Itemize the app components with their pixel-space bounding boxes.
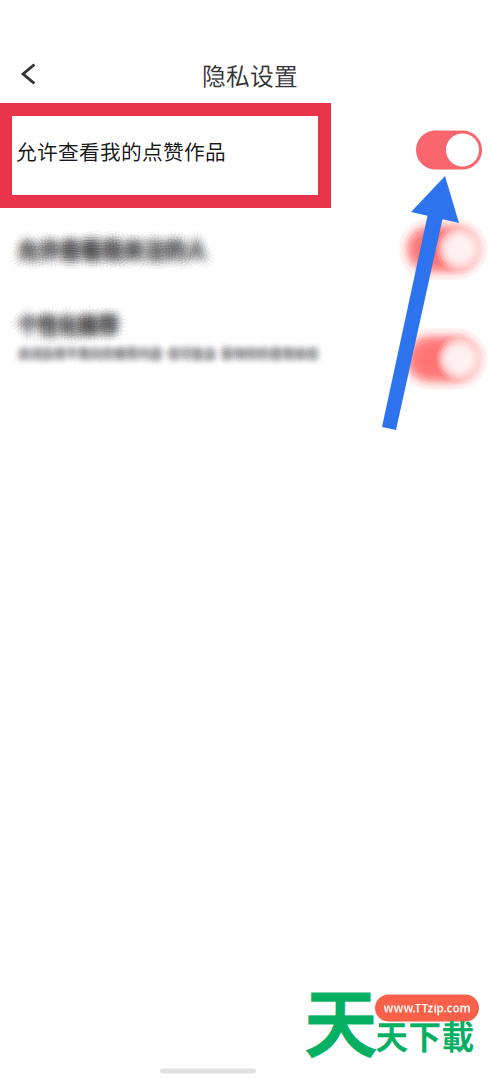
- staticText: 关闭后将不再向你推荐内容 但可能会 影响你的使用体验: [22, 350, 322, 367]
- staticText: 个性化推荐: [20, 319, 120, 348]
- staticText: 个性化推荐: [21, 313, 121, 342]
- staticText: 允许查看我关注的人: [13, 235, 202, 265]
- staticText: 个性化推荐: [17, 320, 117, 349]
- staticText: 个性化推荐: [22, 316, 122, 345]
- staticText: 允许查看我关注的人: [14, 237, 203, 267]
- staticText: 关闭后将不再向你推荐内容 但可能会 影响你的使用体验: [15, 346, 315, 363]
- staticText: 个性化推荐: [10, 316, 110, 345]
- staticText: 允许查看我关注的人: [8, 233, 197, 263]
- staticText: 个性化推荐: [17, 315, 117, 344]
- staticText: 关闭后将不再向你推荐内容 但可能会 影响你的使用体验: [23, 345, 323, 363]
- staticText: 允许查看我的点赞作品: [16, 136, 226, 166]
- staticText: 个性化推荐: [18, 307, 118, 336]
- staticText: 关闭后将不再向你推荐内容 但可能会 影响你的使用体验: [17, 340, 317, 358]
- staticText: 允许查看我关注的人: [14, 231, 203, 260]
- staticText: 允许查看我关注的人: [19, 224, 208, 254]
- staticText: 关闭后将不再向你推荐内容 但可能会 影响你的使用体验: [20, 345, 320, 362]
- staticText: 关闭后将不再向你推荐内容 但可能会 影响你的使用体验: [20, 347, 320, 364]
- staticText: 个性化推荐: [17, 317, 117, 346]
- staticText: 允许查看我关注的人: [24, 242, 213, 272]
- staticText: 个性化推荐: [11, 309, 111, 338]
- staticText: 关闭后将不再向你推荐内容 但可能会 影响你的使用体验: [18, 345, 318, 362]
- staticText: 个性化推荐: [20, 317, 120, 346]
- staticText: 允许查看我关注的人: [16, 236, 205, 266]
- staticText: 允许查看我关注的人: [25, 235, 214, 265]
- staticText: 关闭后将不再向你推荐内容 但可能会 影响你的使用体验: [17, 346, 317, 363]
- staticText: 个性化推荐: [24, 314, 124, 343]
- staticText: 个性化推荐: [25, 311, 125, 340]
- staticText: 关闭后将不再向你推荐内容 但可能会 影响你的使用体验: [13, 344, 313, 362]
- button[interactable]: 个性化推荐: [0, 314, 500, 390]
- button[interactable]: 允许查看我的点赞作品: [0, 103, 500, 207]
- staticText: 关闭后将不再向你推荐内容 但可能会 影响你的使用体验: [16, 343, 316, 360]
- staticText: 个性化推荐: [19, 305, 119, 334]
- staticText: 关闭后将不再向你推荐内容 但可能会 影响你的使用体验: [16, 349, 316, 366]
- staticText: 关闭后将不再向你推荐内容 但可能会 影响你的使用体验: [19, 348, 319, 365]
- staticText: 关闭后将不再向你推荐内容 但可能会 影响你的使用体验: [17, 351, 317, 369]
- staticText: 个性化推荐: [27, 307, 127, 336]
- staticText: 个性化推荐: [24, 306, 124, 335]
- staticText: 允许查看我关注的人: [25, 232, 214, 262]
- staticText: 关闭后将不再向你推荐内容 但可能会 影响你的使用体验: [11, 344, 311, 361]
- staticText: 关闭后将不再向你推荐内容 但可能会 影响你的使用体验: [23, 344, 323, 361]
- staticText: 允许查看我关注的人: [20, 236, 209, 266]
- staticText: 允许查看我关注的人: [28, 235, 217, 265]
- staticText: 允许查看我关注的人: [12, 226, 201, 256]
- staticText: 个性化推荐: [8, 313, 108, 342]
- staticText: 个性化推荐: [9, 305, 109, 334]
- staticText: 个性化推荐: [16, 312, 116, 341]
- staticText: 关闭后将不再向你推荐内容 但可能会 影响你的使用体验: [17, 349, 317, 367]
- staticText: 个性化推荐: [13, 318, 113, 347]
- staticText: 允许查看我关注的人: [12, 230, 201, 260]
- staticText: 允许查看我关注的人: [15, 224, 204, 254]
- staticText: 关闭后将不再向你推荐内容 但可能会 影响你的使用体验: [17, 342, 317, 359]
- staticText: 个性化推荐: [8, 309, 108, 338]
- staticText: 天: [303, 965, 378, 1073]
- staticText: 关闭后将不再向你推荐内容 但可能会 影响你的使用体验: [16, 338, 316, 356]
- staticText: 关闭后将不再向你推荐内容 但可能会 影响你的使用体验: [15, 341, 315, 358]
- staticText: 允许查看我关注的人: [23, 235, 212, 265]
- staticText: 个性化推荐: [21, 307, 121, 336]
- staticText: 允许查看我关注的人: [19, 227, 208, 257]
- staticText: 个性化推荐: [25, 308, 125, 337]
- staticText: 允许查看我关注的人: [18, 237, 207, 266]
- staticText: 关闭后将不再向你推荐内容 但可能会 影响你的使用体验: [21, 349, 321, 366]
- staticText: 允许查看我关注的人: [20, 232, 209, 262]
- staticText: 个性化推荐: [15, 310, 115, 339]
- staticText: 允许查看我关注的人: [28, 231, 217, 261]
- staticText: 个性化推荐: [15, 300, 115, 329]
- staticText: 允许查看我关注的人: [17, 229, 206, 259]
- staticText: 允许查看我关注的人: [19, 239, 208, 269]
- staticText: 关闭后将不再向你推荐内容 但可能会 影响你的使用体验: [13, 346, 313, 363]
- staticText: 关闭后将不再向你推荐内容 但可能会 影响你的使用体验: [20, 351, 320, 368]
- staticText: 个性化推荐: [14, 304, 114, 333]
- staticText: 允许查看我关注的人: [10, 240, 199, 270]
- staticText: 允许查看我关注的人: [17, 239, 206, 269]
- staticText: 关闭后将不再向你推荐内容 但可能会 影响你的使用体验: [20, 343, 320, 360]
- staticText: 个性化推荐: [15, 307, 115, 336]
- staticText: 允许查看我关注的人: [21, 244, 210, 274]
- staticText: 个性化推荐: [24, 318, 124, 347]
- staticText: 允许查看我关注的人: [13, 233, 202, 263]
- button[interactable]: Back: [1, 44, 57, 104]
- staticText: 个性化推荐: [22, 304, 122, 333]
- staticText: 关闭后将不再向你推荐内容 但可能会 影响你的使用体验: [19, 346, 319, 363]
- staticText: 允许查看我关注的人: [14, 240, 203, 270]
- button[interactable]: 允许查看我关注的人: [0, 206, 500, 292]
- staticText: 隐私设置: [202, 58, 298, 92]
- staticText: 个性化推荐: [19, 300, 119, 329]
- staticText: 关闭后将不再向你推荐内容 但可能会 影响你的使用体验: [16, 347, 316, 364]
- staticText: 关闭后将不再向你推荐内容 但可能会 影响你的使用体验: [12, 341, 312, 359]
- staticText: 允许查看我关注的人: [24, 238, 213, 268]
- staticText: 关闭后将不再向你推荐内容 但可能会 影响你的使用体验: [17, 348, 317, 365]
- staticText: 关闭后将不再向你推荐内容 但可能会 影响你的使用体验: [14, 342, 314, 360]
- staticText: 个性化推荐: [12, 306, 112, 335]
- staticText: 个性化推荐: [18, 312, 118, 341]
- staticText: 关闭后将不再向你推荐内容 但可能会 影响你的使用体验: [14, 348, 314, 365]
- staticText: 允许查看我关注的人: [17, 241, 206, 271]
- staticText: 个性化推荐: [17, 305, 117, 334]
- staticText: 个性化推荐: [18, 310, 118, 339]
- staticText: 个性化推荐: [12, 302, 112, 331]
- staticText: 个性化推荐: [19, 315, 119, 344]
- staticText: 个性化推荐: [15, 313, 115, 342]
